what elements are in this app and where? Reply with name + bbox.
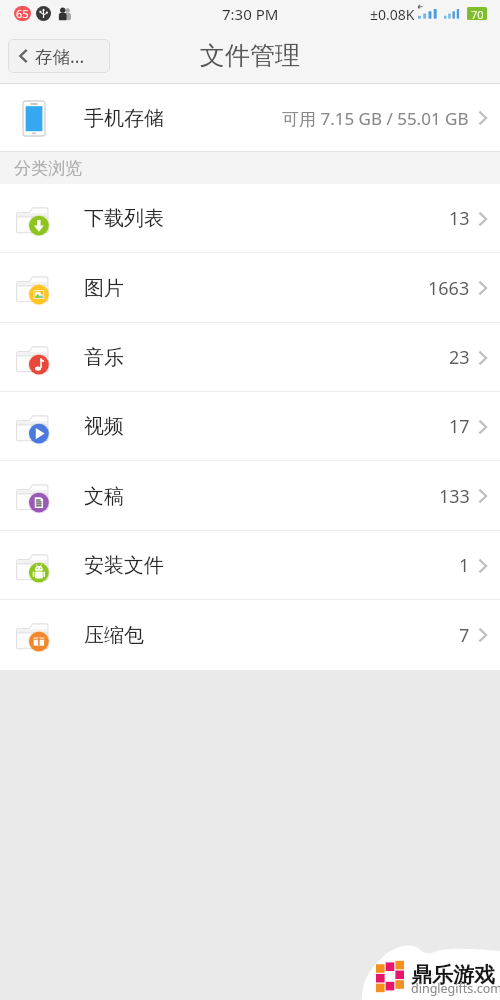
staticText: dinglegifts.com xyxy=(411,980,500,997)
staticText: 70 xyxy=(471,7,484,20)
button[interactable]: 安装文件 xyxy=(0,531,500,600)
staticText: 分类浏览 xyxy=(14,158,82,179)
staticText: 视频 xyxy=(84,414,124,439)
button[interactable]: Back to 存储 xyxy=(8,39,110,73)
staticText: 文稿 xyxy=(84,484,124,509)
staticText: 7 xyxy=(459,623,470,648)
button[interactable]: 下载列表 xyxy=(0,184,500,253)
staticText: 音乐 xyxy=(84,345,124,370)
staticText: 文件管理 xyxy=(200,40,300,71)
staticText: 压缩包 xyxy=(84,623,144,648)
staticText: 133 xyxy=(439,484,470,509)
staticText: 23 xyxy=(449,345,470,370)
staticText: 17 xyxy=(449,414,470,439)
staticText: 13 xyxy=(449,206,470,231)
staticText: 图片 xyxy=(84,276,124,301)
button[interactable]: 手机存储 xyxy=(0,84,500,152)
staticText: 手机存储 xyxy=(84,106,164,131)
staticText: 下载列表 xyxy=(84,206,164,231)
staticText: 鼎乐游戏 xyxy=(411,962,495,988)
staticText: 1 xyxy=(459,553,470,578)
button[interactable]: 文稿 xyxy=(0,461,500,531)
staticText: 7:30 PM xyxy=(222,4,279,24)
button[interactable]: 视频 xyxy=(0,392,500,461)
staticText: 存储... xyxy=(35,44,85,68)
button[interactable]: 图片 xyxy=(0,253,500,323)
button[interactable]: 压缩包 xyxy=(0,600,500,670)
staticText: 1663 xyxy=(428,276,470,301)
staticText: 可用 7.15 GB / 55.01 GB xyxy=(282,107,469,130)
staticText: 安装文件 xyxy=(84,553,164,578)
staticText: 65 xyxy=(16,6,29,21)
button[interactable]: 音乐 xyxy=(0,323,500,392)
staticText: ±0.08K xyxy=(370,5,415,24)
